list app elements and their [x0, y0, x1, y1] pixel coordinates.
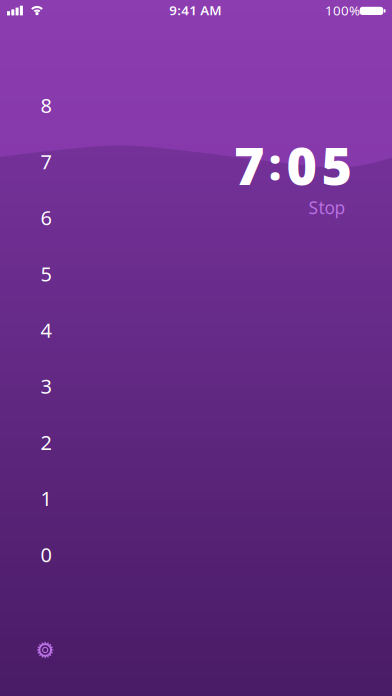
staticText: Stop	[308, 196, 345, 219]
staticText: 4	[40, 317, 51, 343]
staticText: 5	[40, 260, 51, 287]
staticText: 7	[40, 148, 51, 175]
staticText: 100%	[325, 1, 360, 19]
staticText: 8	[40, 92, 51, 119]
staticText: 3	[40, 373, 51, 399]
staticText: 1	[40, 485, 51, 512]
staticText: :	[269, 134, 282, 193]
staticText: 6	[40, 204, 51, 231]
staticText: 0	[40, 541, 51, 568]
staticText: 9:41 AM	[169, 1, 221, 19]
staticText: 2	[40, 429, 51, 455]
staticText: 5	[321, 130, 351, 199]
button[interactable]: Stop	[308, 196, 345, 219]
staticText: 0	[287, 130, 317, 199]
button[interactable]: Settings	[30, 635, 60, 665]
staticText: 7	[234, 130, 264, 199]
